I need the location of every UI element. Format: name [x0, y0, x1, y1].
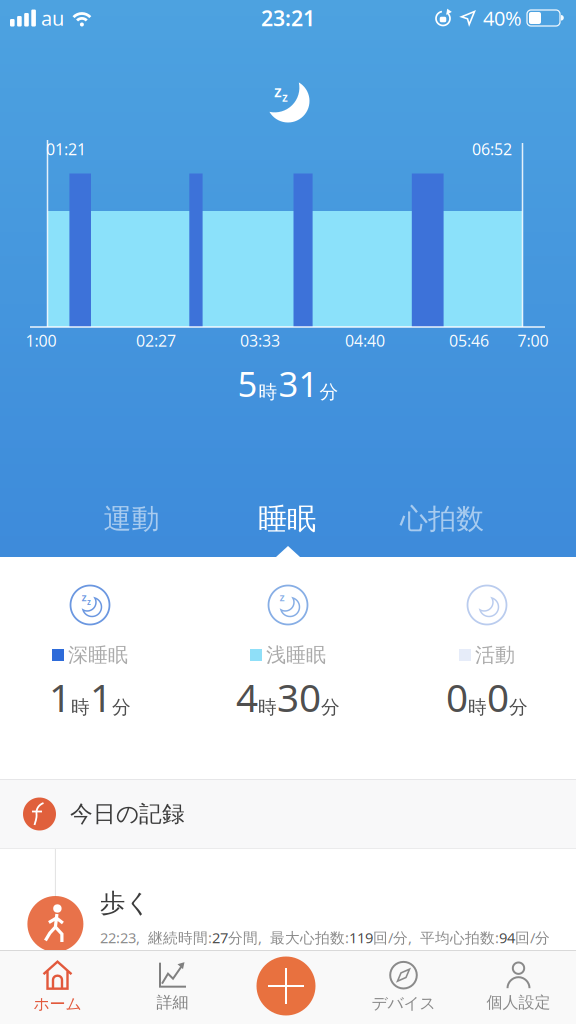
staticText: 歩く	[100, 887, 151, 918]
staticText: z	[81, 590, 86, 604]
staticText: 7:00	[517, 330, 548, 351]
staticText: au	[41, 5, 64, 31]
staticText: 04:40	[345, 330, 385, 351]
staticText: 40%	[483, 5, 522, 31]
button[interactable]: 睡眠	[258, 501, 316, 537]
staticText: 0	[446, 671, 468, 723]
staticText: 時	[468, 696, 487, 719]
staticText: 詳細	[156, 993, 188, 1012]
staticText: 今日の記録	[70, 800, 185, 828]
staticText: 心拍数	[400, 502, 484, 536]
staticText: 22:23, 継続時間:	[100, 928, 212, 947]
button[interactable]: 運動	[103, 502, 159, 536]
staticText: 94	[499, 928, 515, 947]
staticText: 分	[321, 696, 340, 719]
staticText: 分	[509, 696, 528, 719]
staticText: z	[274, 80, 282, 102]
staticText: 01:21	[46, 138, 86, 160]
staticText: 分間, 最大心拍数:	[228, 928, 349, 947]
button[interactable]: デバイス	[346, 956, 461, 1018]
staticText: 119	[349, 928, 373, 947]
button[interactable]: 今日の記録	[0, 797, 576, 830]
button[interactable]: 個人設定	[461, 956, 576, 1018]
staticText: デバイス	[371, 994, 435, 1013]
staticText: 23:21	[261, 4, 315, 32]
staticText: 05:46	[449, 330, 489, 351]
staticText: z	[87, 597, 91, 607]
staticText: ホーム	[33, 994, 81, 1014]
button[interactable]: ホーム	[0, 956, 115, 1018]
button[interactable]: 心拍数	[400, 502, 484, 536]
staticText: 個人設定	[486, 993, 550, 1012]
staticText: 時	[258, 696, 277, 719]
staticText: z	[282, 89, 288, 105]
staticText: 30	[277, 671, 321, 723]
staticText: 1	[49, 671, 71, 723]
staticText: 運動	[103, 502, 159, 536]
staticText: 1	[90, 671, 112, 723]
staticText: 31	[278, 360, 318, 406]
staticText: 回/分	[515, 928, 550, 947]
staticText: z	[279, 590, 284, 604]
staticText: 分	[319, 381, 338, 403]
staticText: 1:00	[25, 330, 56, 351]
staticText: 03:33	[240, 330, 280, 351]
staticText: 分	[112, 696, 131, 719]
staticText: 時	[258, 381, 277, 403]
button[interactable]: 詳細	[115, 956, 230, 1018]
staticText: 睡眠	[258, 501, 316, 537]
staticText: 5	[237, 360, 257, 406]
staticText: 06:52	[472, 138, 512, 160]
staticText: 深睡眠	[68, 643, 128, 667]
staticText: 時	[71, 696, 90, 719]
button[interactable]: 歩く	[0, 836, 576, 964]
staticText: 0	[487, 671, 509, 723]
staticText: 浅睡眠	[266, 643, 326, 667]
button[interactable]: Add record	[256, 956, 315, 1015]
staticText: 27	[212, 928, 228, 947]
staticText: 回/分, 平均心拍数:	[373, 928, 499, 947]
staticText: 4	[236, 671, 258, 723]
staticText: 活動	[475, 643, 515, 667]
staticText: 02:27	[136, 330, 176, 351]
